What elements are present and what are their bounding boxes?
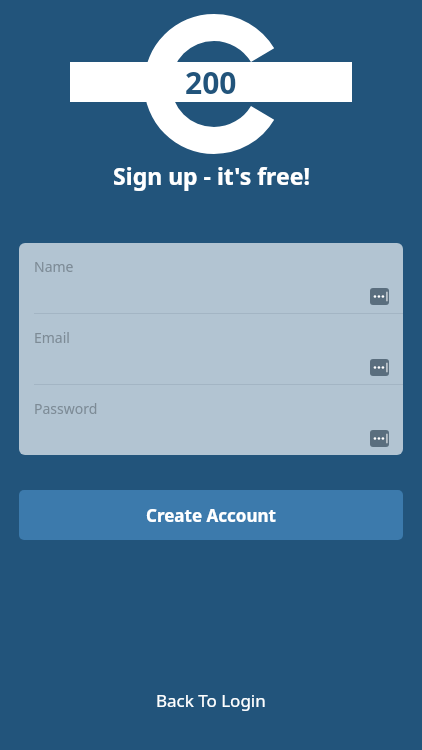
button[interactable]: More options for Password	[370, 430, 389, 447]
staticText: Create Account	[146, 504, 276, 527]
button[interactable]: Password	[19, 385, 403, 455]
button[interactable]: Email	[19, 314, 403, 384]
button[interactable]: Name	[19, 243, 403, 313]
staticText: 200	[185, 62, 237, 102]
staticText: Back To Login	[156, 689, 266, 712]
staticText: Name	[34, 257, 74, 276]
button[interactable]: More options for Name	[370, 288, 389, 305]
staticText: Password	[34, 399, 98, 418]
button[interactable]: Back To Login	[0, 672, 422, 728]
button[interactable]: More options for Email	[370, 359, 389, 376]
staticText: Email	[34, 328, 70, 347]
button[interactable]: Create Account	[19, 490, 403, 540]
staticText: Sign up - it's free!	[113, 160, 310, 191]
